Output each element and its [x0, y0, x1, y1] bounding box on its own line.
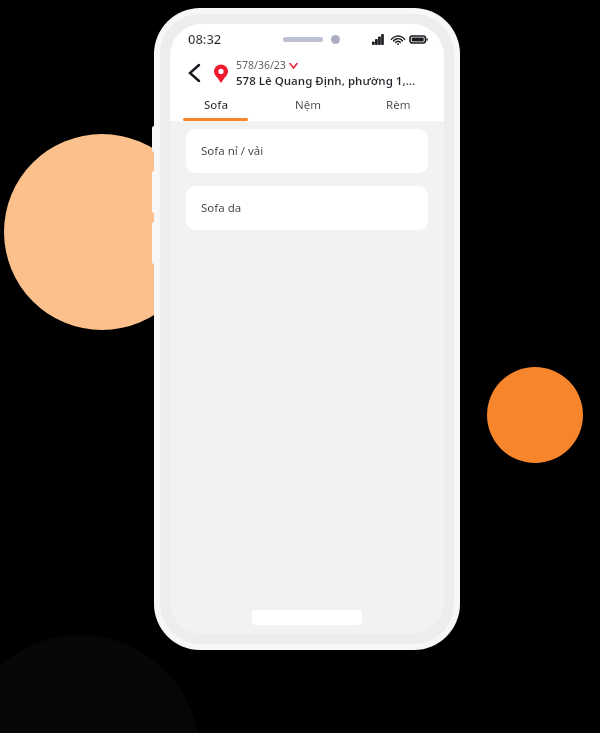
- button[interactable]: Nệm: [262, 92, 353, 118]
- staticText: 578/36/23: [236, 58, 286, 72]
- staticText: Sofa da: [201, 200, 242, 216]
- staticText: Rèm: [386, 97, 411, 113]
- button[interactable]: Rèm: [353, 92, 444, 118]
- staticText: Sofa nỉ / vải: [201, 143, 264, 159]
- staticText: 08:32: [188, 30, 222, 48]
- button[interactable]: Sofa: [170, 92, 262, 118]
- staticText: 578 Lê Quang Định, phường 1,…: [236, 73, 416, 89]
- button[interactable]: Sofa da: [186, 186, 428, 230]
- button[interactable]: Back: [180, 59, 208, 87]
- button[interactable]: Sofa nỉ / vải: [186, 129, 428, 173]
- button[interactable]: 578/36/23: [236, 58, 430, 89]
- staticText: Nệm: [295, 97, 321, 113]
- staticText: Sofa: [204, 97, 229, 113]
